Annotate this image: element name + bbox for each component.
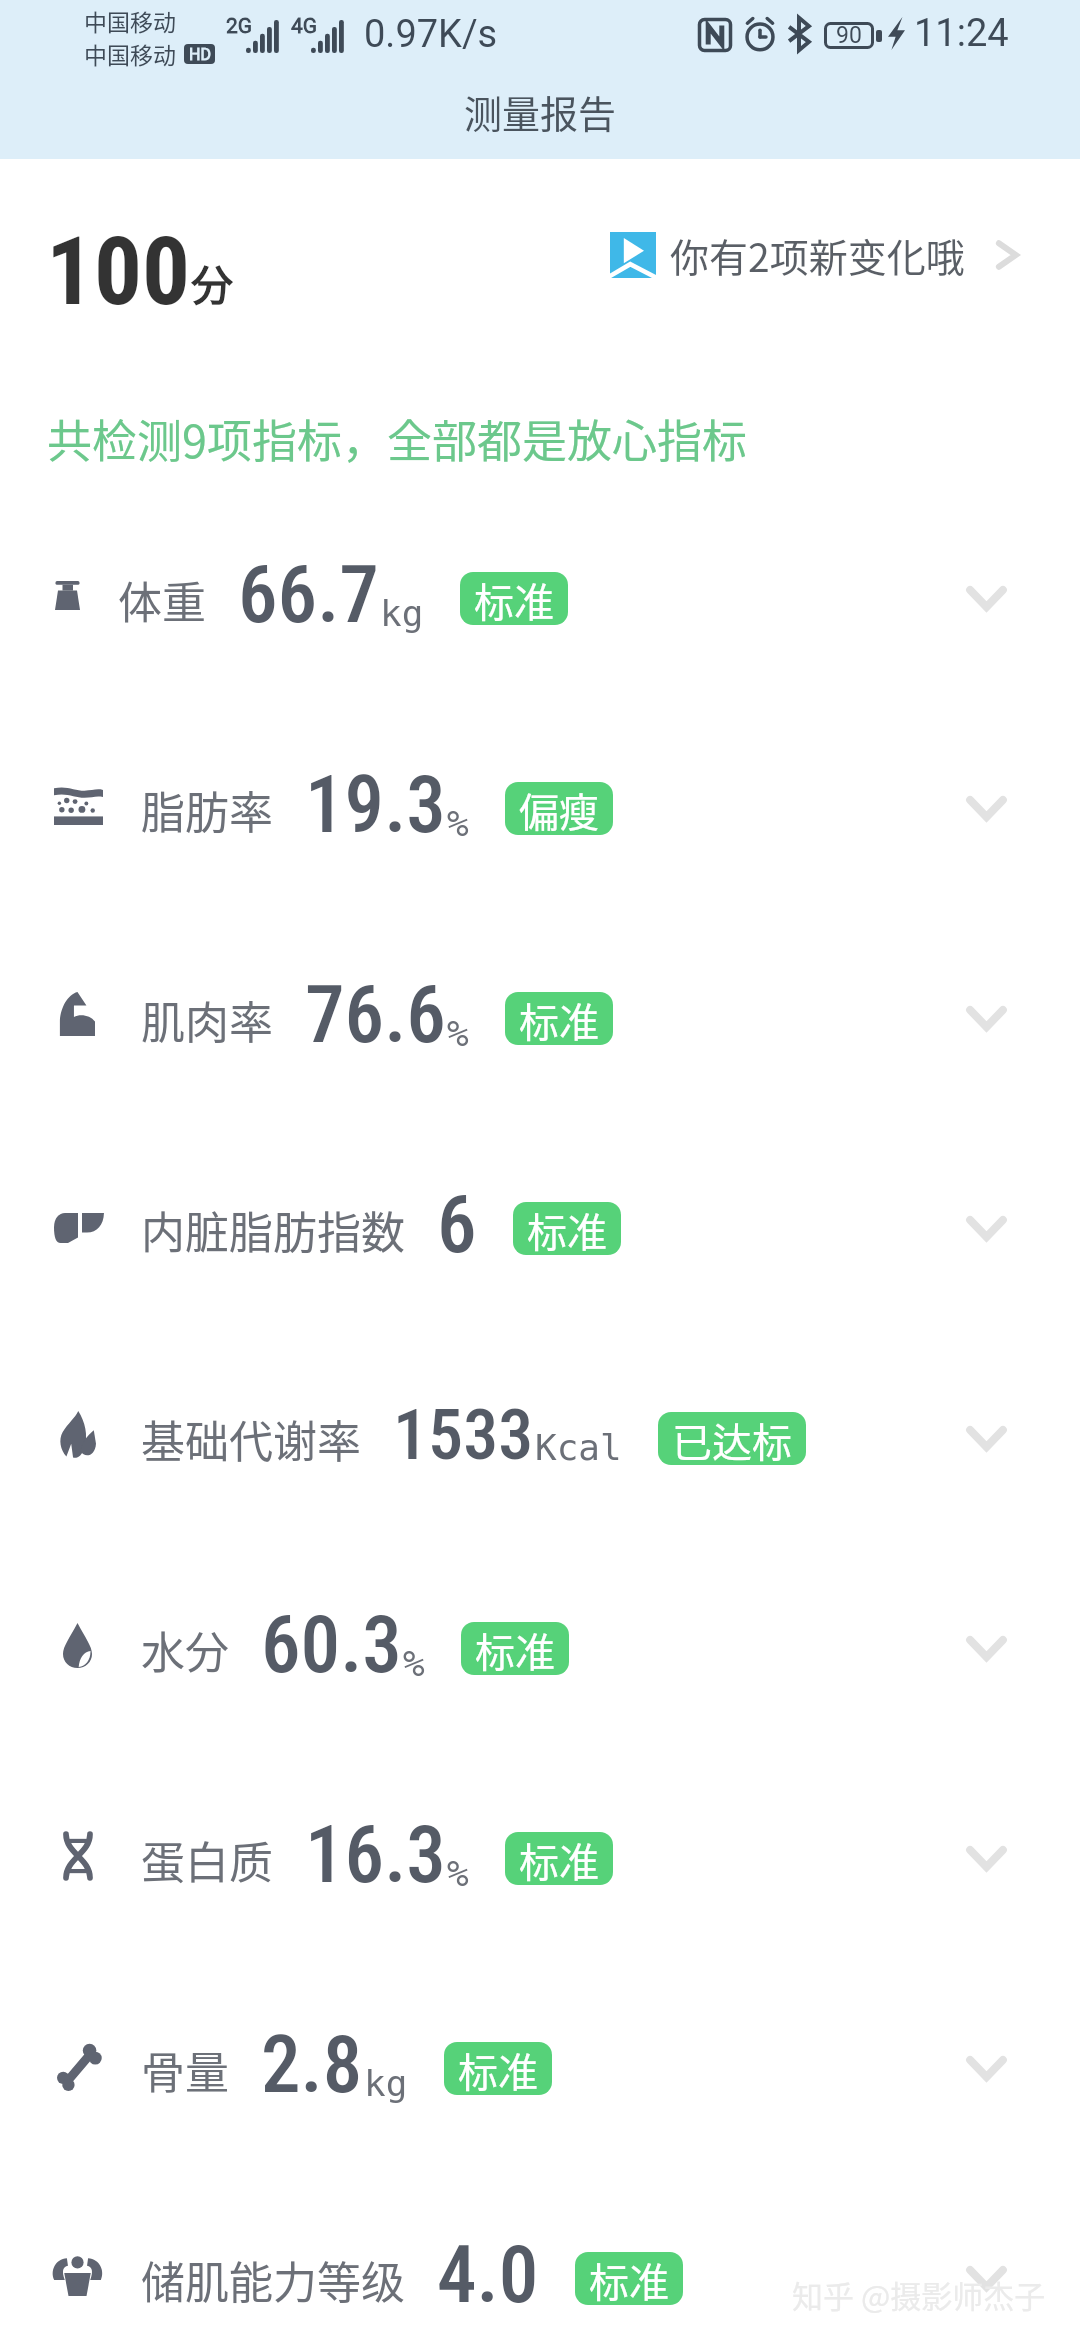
staticText: 19.3 bbox=[305, 759, 446, 852]
staticText: % bbox=[447, 1853, 469, 1895]
staticText: 内脏脂肪指数 bbox=[141, 1198, 405, 1262]
button[interactable]: 肌肉率 bbox=[0, 913, 1080, 1123]
staticText: 测量报告 bbox=[464, 84, 617, 139]
staticText: 中国移动 bbox=[84, 37, 176, 70]
staticText: 标准 bbox=[474, 572, 554, 624]
button[interactable]: 蛋白质 bbox=[0, 1753, 1080, 1963]
staticText: 分 bbox=[191, 252, 234, 313]
staticText: 2.8 bbox=[261, 2019, 363, 2112]
staticText: 偏瘦 bbox=[519, 782, 599, 834]
staticText: 6 bbox=[437, 1179, 477, 1272]
staticText: 4G bbox=[291, 14, 318, 39]
staticText: 脂肪率 bbox=[141, 778, 273, 842]
staticText: 标准 bbox=[527, 1202, 607, 1254]
staticText: 水分 bbox=[141, 1618, 229, 1682]
button[interactable]: 内脏脂肪指数 bbox=[0, 1123, 1080, 1333]
staticText: kg bbox=[364, 2063, 408, 2105]
staticText: 标准 bbox=[519, 1832, 599, 1884]
staticText: % bbox=[447, 803, 469, 845]
button[interactable]: 你有2项新变化哦 bbox=[610, 227, 1021, 283]
staticText: 4.0 bbox=[437, 2229, 539, 2322]
staticText: HD bbox=[189, 45, 211, 64]
staticText: 标准 bbox=[475, 1622, 555, 1674]
staticText: 100 bbox=[46, 216, 191, 327]
staticText: 76.6 bbox=[305, 969, 446, 1062]
staticText: 标准 bbox=[519, 992, 599, 1044]
staticText: 标准 bbox=[458, 2042, 538, 2094]
staticText: 知乎 @摄影师杰子 bbox=[792, 2272, 1046, 2317]
staticText: 90 bbox=[836, 22, 862, 49]
staticText: kg bbox=[380, 593, 424, 635]
button[interactable]: 体重 bbox=[0, 493, 1080, 703]
staticText: 60.3 bbox=[261, 1599, 402, 1692]
staticText: 0.97K/s bbox=[364, 12, 498, 57]
staticText: 蛋白质 bbox=[141, 1828, 273, 1892]
button[interactable]: 骨量 bbox=[0, 1963, 1080, 2173]
staticText: 2G bbox=[226, 14, 253, 39]
staticText: % bbox=[403, 1643, 425, 1685]
staticText: 基础代谢率 bbox=[141, 1407, 361, 1471]
staticText: 66.7 bbox=[238, 549, 379, 642]
staticText: 骨量 bbox=[141, 2038, 229, 2102]
staticText: 储肌能力等级 bbox=[141, 2248, 405, 2312]
staticText: 体重 bbox=[118, 568, 206, 632]
staticText: 中国移动 bbox=[84, 4, 176, 37]
staticText: 1533 bbox=[393, 1394, 534, 1476]
button[interactable]: 脂肪率 bbox=[0, 703, 1080, 913]
staticText: 你有2项新变化哦 bbox=[670, 227, 965, 283]
button[interactable]: 基础代谢率 bbox=[0, 1333, 1080, 1543]
button[interactable]: 水分 bbox=[0, 1543, 1080, 1753]
staticText: 肌肉率 bbox=[141, 988, 273, 1052]
staticText: % bbox=[447, 1013, 469, 1055]
button[interactable]: 储肌能力等级 bbox=[0, 2173, 1080, 2340]
staticText: 16.3 bbox=[305, 1809, 446, 1902]
staticText: 已达标 bbox=[672, 1412, 792, 1464]
staticText: 11:24 bbox=[914, 11, 1009, 56]
staticText: Kcal bbox=[535, 1427, 622, 1469]
staticText: 标准 bbox=[589, 2252, 669, 2304]
staticText: 共检测9项指标，全部都是放心指标 bbox=[47, 406, 747, 471]
